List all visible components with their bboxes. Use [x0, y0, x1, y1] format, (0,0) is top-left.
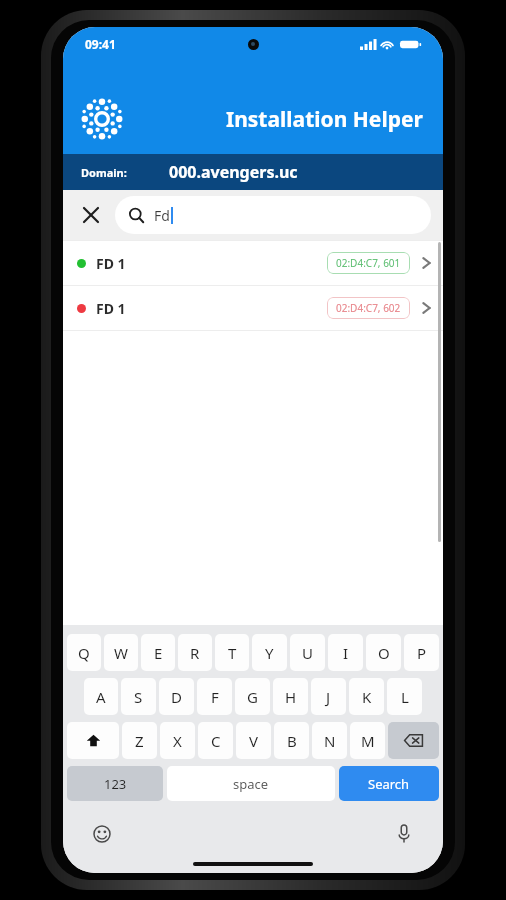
button[interactable]: P	[404, 634, 439, 671]
staticText: R	[190, 643, 200, 663]
button[interactable]: M	[350, 722, 385, 759]
button[interactable]: U	[290, 634, 325, 671]
staticText: B	[287, 731, 297, 751]
staticText: L	[401, 687, 409, 707]
button[interactable]: K	[349, 678, 384, 715]
button[interactable]: Shift	[67, 722, 119, 759]
staticText: K	[362, 687, 372, 707]
staticText: J	[326, 687, 331, 707]
staticText: M	[361, 731, 375, 751]
button[interactable]: Search	[339, 766, 439, 801]
staticText: 09:41	[85, 36, 116, 52]
button[interactable]: Fd	[115, 196, 431, 234]
button[interactable]: F	[197, 678, 232, 715]
staticText: Z	[135, 731, 144, 751]
staticText: O	[378, 643, 390, 663]
button[interactable]: V	[236, 722, 271, 759]
button[interactable]: D	[159, 678, 194, 715]
staticText: Y	[265, 643, 274, 663]
button[interactable]: T	[215, 634, 249, 671]
other: App logo	[81, 98, 123, 140]
button[interactable]: J	[311, 678, 346, 715]
button[interactable]: Clear search	[75, 199, 107, 231]
button[interactable]: A	[84, 678, 118, 715]
staticText: I	[343, 643, 349, 663]
staticText: Installation Helper	[226, 105, 423, 134]
other: Open FD 1	[422, 300, 431, 316]
staticText: FD 1	[96, 299, 126, 318]
button[interactable]: R	[178, 634, 212, 671]
staticText: FD 1	[96, 254, 126, 273]
staticText: S	[134, 687, 143, 707]
staticText: 02:D4:C7, 602	[336, 301, 401, 315]
button[interactable]: C	[198, 722, 233, 759]
staticText: U	[302, 643, 313, 663]
button[interactable]: Z	[122, 722, 157, 759]
staticText: P	[417, 643, 427, 663]
staticText: 000.avengers.uc	[169, 161, 298, 183]
staticText: T	[228, 643, 237, 663]
button[interactable]: G	[235, 678, 270, 715]
staticText: V	[249, 731, 259, 751]
staticText: Search	[368, 775, 410, 793]
button[interactable]: W	[104, 634, 138, 671]
staticText: C	[211, 731, 221, 751]
staticText: A	[96, 687, 106, 707]
staticText: Q	[78, 643, 90, 663]
button[interactable]: Y	[252, 634, 287, 671]
staticText: 123	[104, 775, 127, 793]
staticText: D	[171, 687, 182, 707]
staticText: W	[114, 643, 128, 663]
staticText: N	[324, 731, 336, 751]
staticText: space	[233, 775, 269, 793]
button[interactable]: FD 1	[63, 241, 443, 285]
staticText: X	[173, 731, 182, 751]
staticText: Domain:	[81, 165, 127, 180]
staticText: E	[154, 643, 163, 663]
button[interactable]: S	[121, 678, 156, 715]
button[interactable]: Emoji	[89, 821, 115, 847]
staticText: G	[247, 687, 258, 707]
staticText: Fd	[154, 206, 170, 225]
button[interactable]: N	[312, 722, 347, 759]
button[interactable]: L	[387, 678, 422, 715]
button[interactable]: space	[167, 766, 335, 801]
button[interactable]: Voice input	[391, 821, 417, 847]
button[interactable]: H	[273, 678, 308, 715]
button[interactable]: O	[366, 634, 401, 671]
button[interactable]: Backspace	[388, 722, 439, 759]
button[interactable]: X	[160, 722, 195, 759]
button[interactable]: FD 1	[63, 286, 443, 330]
button[interactable]: B	[274, 722, 309, 759]
staticText: H	[285, 687, 297, 707]
button[interactable]: Q	[67, 634, 101, 671]
staticText: F	[211, 687, 219, 707]
other: Open FD 1	[422, 255, 431, 271]
button[interactable]: I	[328, 634, 363, 671]
button[interactable]: E	[141, 634, 175, 671]
staticText: 02:D4:C7, 601	[336, 256, 401, 270]
button[interactable]: 123	[67, 766, 163, 801]
